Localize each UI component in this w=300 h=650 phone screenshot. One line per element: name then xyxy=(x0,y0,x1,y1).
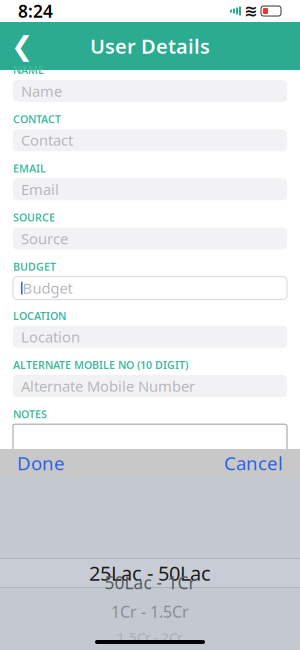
staticText: Source xyxy=(21,229,68,248)
button[interactable]: Done xyxy=(13,447,69,479)
button[interactable]: Contact xyxy=(0,129,300,151)
staticText: LOCATION xyxy=(13,309,66,323)
button[interactable]: Name xyxy=(0,80,300,102)
staticText: Email xyxy=(21,180,59,199)
button[interactable]: Alternate Mobile Number xyxy=(0,375,300,397)
button[interactable]: Budget xyxy=(0,277,300,300)
staticText: ❮ xyxy=(11,31,33,61)
staticText: BUDGET xyxy=(13,259,56,274)
staticText: User Details xyxy=(90,33,210,59)
staticText: ALTERNATE MOBILE NO (10 DIGIT) xyxy=(13,358,188,372)
button[interactable]: Source xyxy=(0,227,300,249)
staticText: NAME xyxy=(13,63,44,77)
staticText: Done xyxy=(17,451,65,475)
staticText: 1Cr - 1.5Cr xyxy=(111,601,189,622)
staticText: SOURCE xyxy=(13,210,55,224)
staticText: Budget xyxy=(22,278,72,298)
staticText: Cancel xyxy=(224,451,283,475)
staticText: Contact xyxy=(21,130,73,150)
staticText: Location xyxy=(21,327,80,347)
button[interactable]: Location xyxy=(0,326,300,348)
staticText: 8:24 xyxy=(18,0,53,22)
button[interactable]: Email xyxy=(0,178,300,200)
button[interactable]: Cancel xyxy=(220,447,287,479)
button[interactable]: Back xyxy=(0,22,44,70)
staticText: 25Lac - 50Lac xyxy=(89,560,211,586)
staticText: 1.5Cr - 2Cr xyxy=(117,628,183,646)
button[interactable] xyxy=(0,424,300,458)
staticText: 50Lac - 1Cr xyxy=(104,571,195,594)
staticText: Alternate Mobile Number xyxy=(21,376,195,396)
staticText: CONTACT xyxy=(13,112,61,126)
staticText: ≋ xyxy=(244,2,257,20)
staticText: Name xyxy=(21,81,62,101)
staticText: EMAIL xyxy=(13,161,46,175)
staticText: NOTES xyxy=(13,407,47,421)
